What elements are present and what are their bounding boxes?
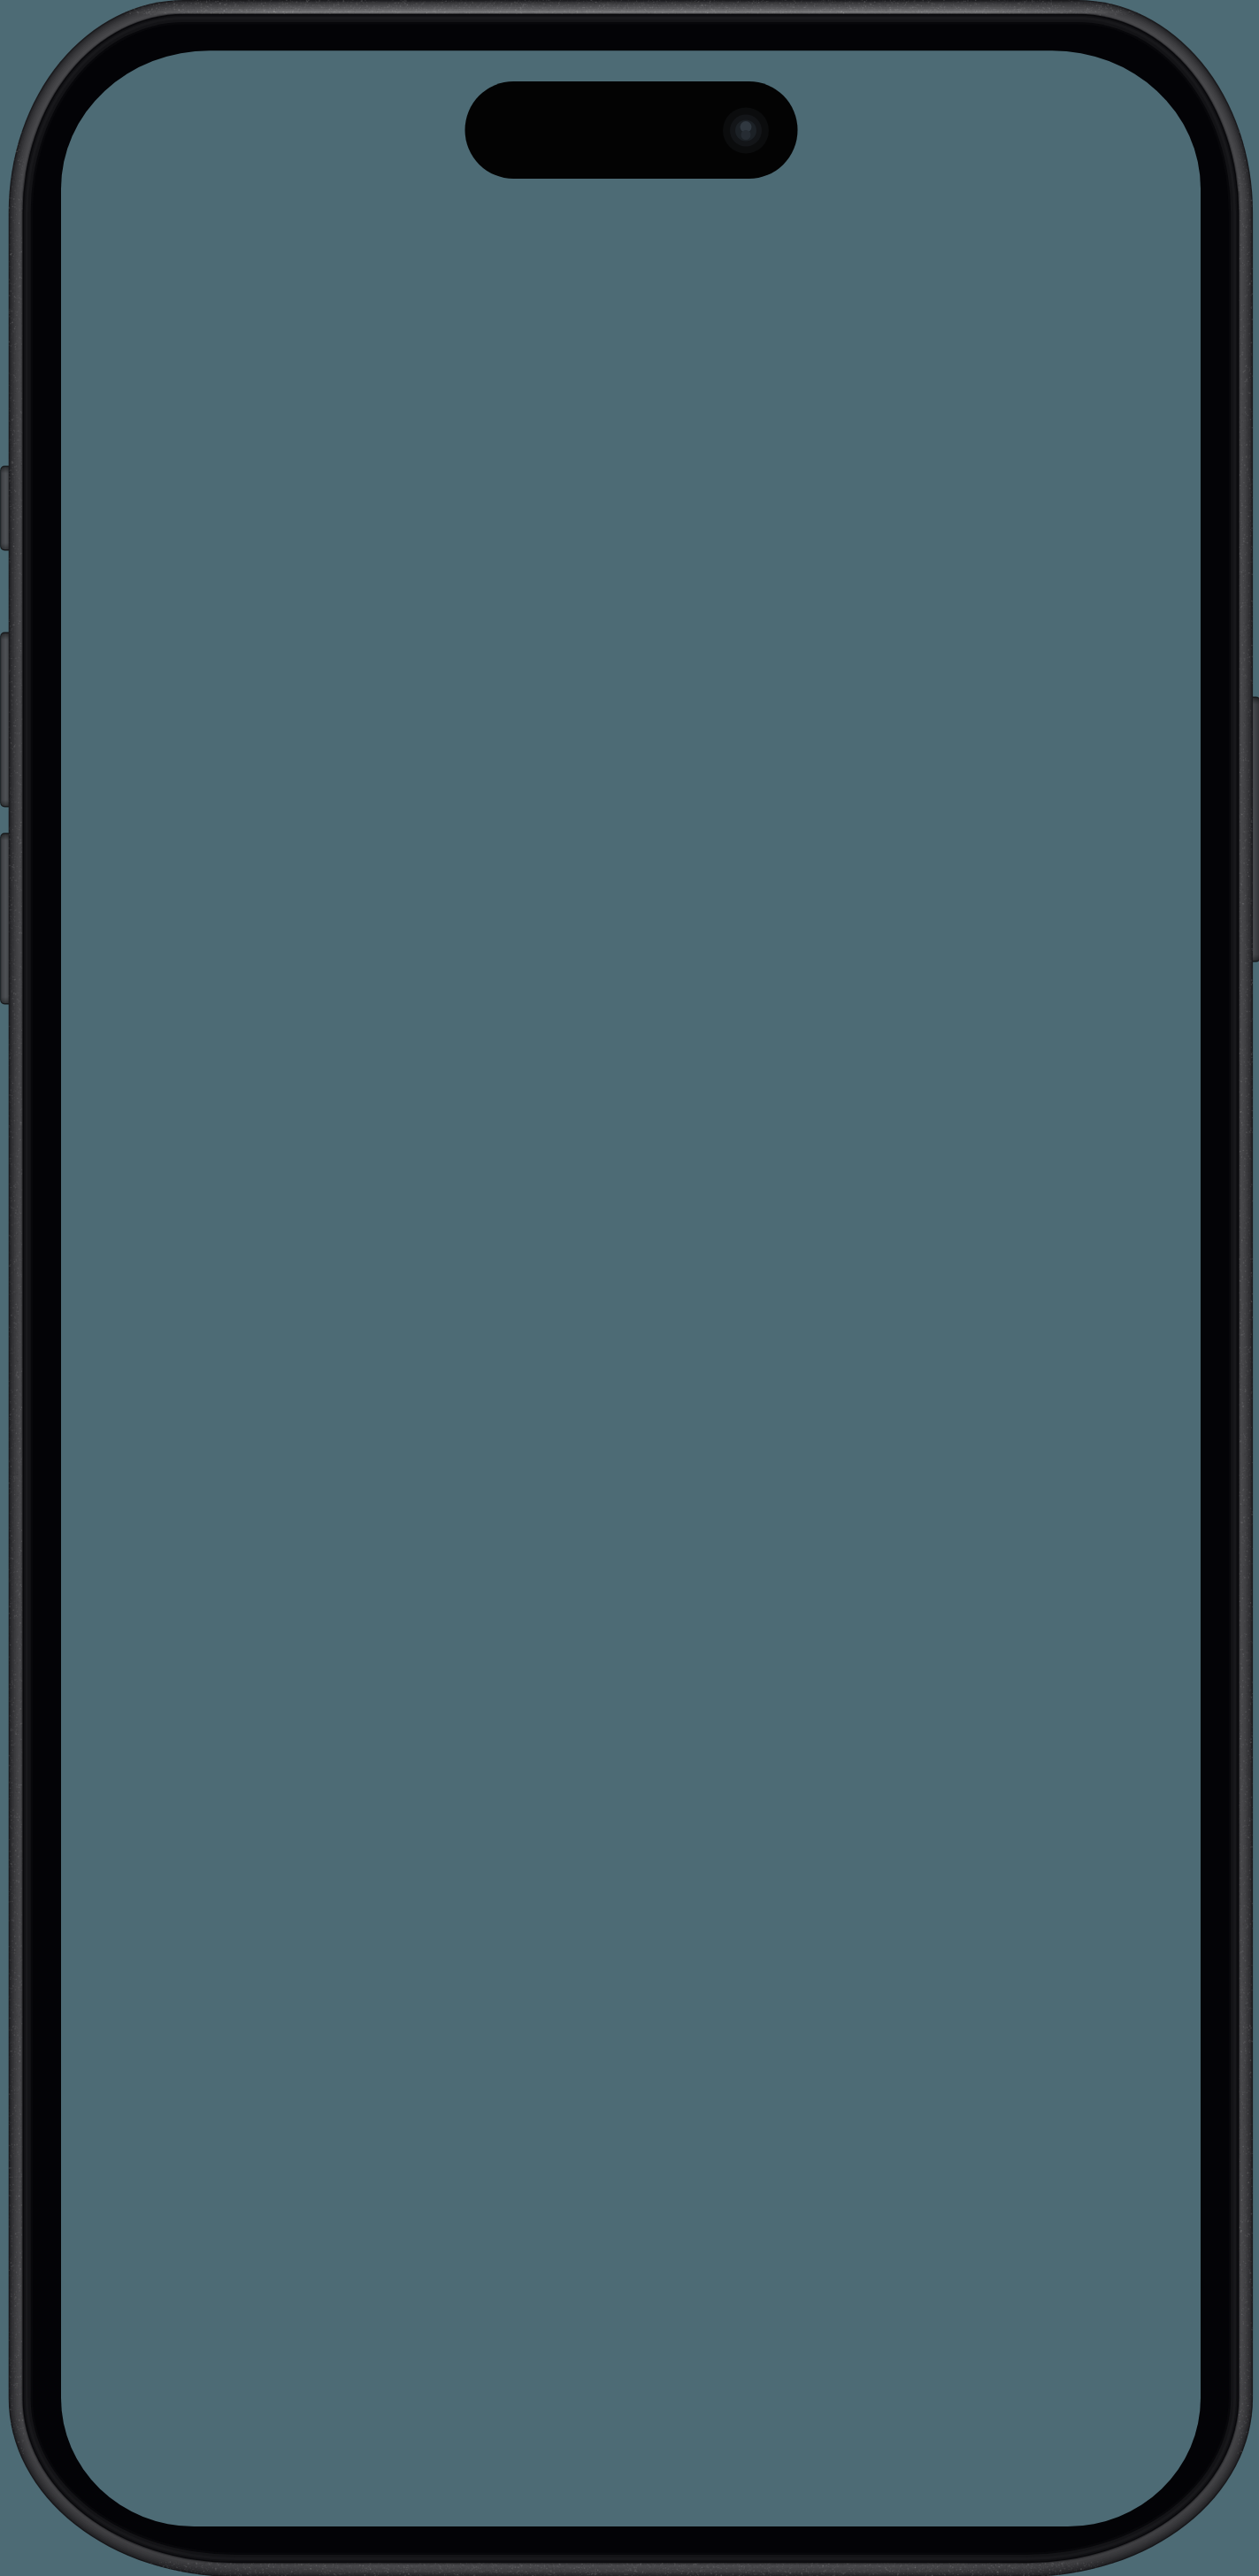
button[interactable]: Power <box>1235 698 1259 961</box>
button[interactable]: Ring / Silent switch <box>1 467 27 549</box>
button[interactable]: Volume up <box>1 633 27 806</box>
button[interactable]: Volume down <box>1 834 27 1003</box>
button[interactable]: Screen <box>61 50 1201 2526</box>
